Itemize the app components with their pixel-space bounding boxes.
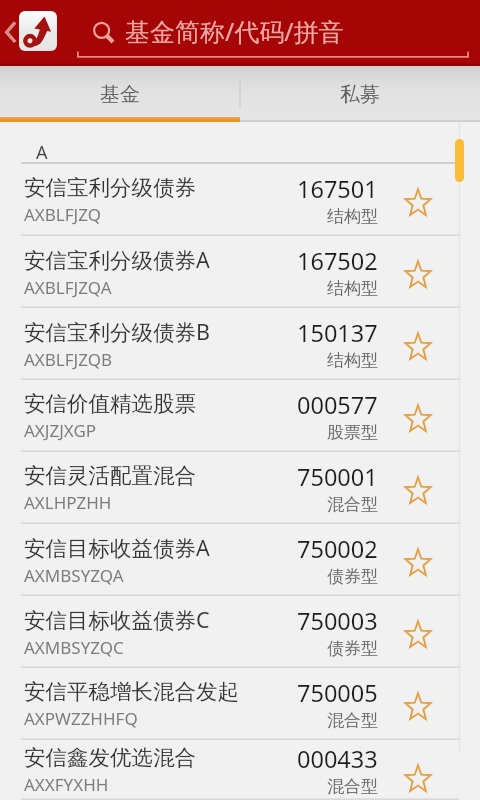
staticText: 安信宝利分级债券A bbox=[24, 245, 210, 274]
staticText: AXMBSYZQC bbox=[24, 636, 124, 659]
staticText: 混合型 bbox=[327, 494, 378, 515]
staticText: 私募 bbox=[340, 82, 380, 107]
staticText: 167501 bbox=[297, 173, 378, 205]
button[interactable]: 基金 bbox=[0, 66, 240, 122]
staticText: 股票型 bbox=[327, 422, 378, 443]
staticText: 750002 bbox=[297, 533, 378, 565]
staticText: 750003 bbox=[297, 605, 378, 637]
staticText: AXPWZZHHFQ bbox=[24, 707, 138, 730]
staticText: AXBLFJZQB bbox=[24, 348, 113, 371]
button[interactable]: 安信宝利分级债券A bbox=[0, 236, 480, 308]
staticText: 安信价值精选股票 bbox=[24, 390, 196, 417]
button[interactable]: 安信目标收益债券A bbox=[0, 524, 480, 596]
button[interactable]: Favorite bbox=[401, 546, 434, 579]
button[interactable]: 安信目标收益债券C bbox=[0, 596, 480, 668]
staticText: 750005 bbox=[297, 677, 378, 709]
staticText: AXXFYXHH bbox=[24, 773, 109, 796]
staticText: 安信目标收益债券A bbox=[24, 533, 210, 562]
button[interactable]: 基金简称/代码/拼音 bbox=[77, 0, 469, 66]
staticText: 安信目标收益债券C bbox=[24, 605, 210, 634]
button[interactable]: Favorite bbox=[401, 402, 434, 435]
button[interactable]: 安信平稳增长混合发起 bbox=[0, 668, 480, 740]
staticText: AXBLFJZQ bbox=[24, 203, 102, 226]
staticText: AXLHPZHH bbox=[24, 491, 112, 514]
staticText: 混合型 bbox=[327, 776, 378, 797]
staticText: 安信鑫发优选混合 bbox=[24, 744, 196, 771]
button[interactable]: 安信宝利分级债券B bbox=[0, 308, 480, 380]
staticText: 债券型 bbox=[327, 638, 378, 659]
staticText: 基金 bbox=[100, 82, 140, 107]
staticText: 结构型 bbox=[327, 350, 378, 371]
staticText: 安信灵活配置混合 bbox=[24, 462, 196, 489]
button[interactable]: Favorite bbox=[401, 186, 434, 219]
button[interactable]: Favorite bbox=[401, 618, 434, 651]
button[interactable]: Favorite bbox=[401, 258, 434, 291]
button[interactable]: 安信灵活配置混合 bbox=[0, 452, 480, 524]
staticText: 安信平稳增长混合发起 bbox=[24, 678, 239, 705]
staticText: 债券型 bbox=[327, 566, 378, 587]
button[interactable]: Favorite bbox=[401, 762, 434, 795]
button[interactable]: 安信宝利分级债券 bbox=[0, 164, 480, 236]
button[interactable]: Favorite bbox=[401, 330, 434, 363]
staticText: A bbox=[36, 140, 48, 164]
staticText: 000577 bbox=[297, 389, 378, 421]
button[interactable]: Favorite bbox=[401, 690, 434, 723]
staticText: AXBLFJZQA bbox=[24, 276, 112, 299]
button[interactable]: Home bbox=[19, 11, 57, 51]
button[interactable]: 安信鑫发优选混合 bbox=[0, 740, 480, 800]
button[interactable]: Favorite bbox=[401, 474, 434, 507]
staticText: AXMBSYZQA bbox=[24, 564, 124, 587]
staticText: 150137 bbox=[297, 317, 378, 349]
staticText: AXJZJXGP bbox=[24, 419, 97, 442]
staticText: 结构型 bbox=[327, 206, 378, 227]
staticText: 安信宝利分级债券B bbox=[24, 317, 210, 346]
button[interactable]: 私募 bbox=[240, 66, 480, 122]
button[interactable]: Back bbox=[0, 14, 21, 51]
staticText: 基金简称/代码/拼音 bbox=[125, 14, 344, 48]
staticText: 000433 bbox=[297, 743, 378, 775]
button[interactable]: 安信价值精选股票 bbox=[0, 380, 480, 452]
staticText: 结构型 bbox=[327, 278, 378, 299]
staticText: 167502 bbox=[297, 245, 378, 277]
staticText: 750001 bbox=[297, 461, 378, 493]
staticText: 安信宝利分级债券 bbox=[24, 174, 196, 201]
staticText: 混合型 bbox=[327, 710, 378, 731]
